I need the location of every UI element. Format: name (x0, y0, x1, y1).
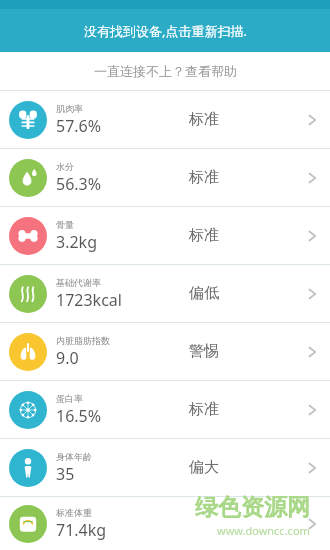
staticText: 内脏脂肪指数 (56, 335, 110, 346)
button[interactable]: 水分 (0, 149, 330, 206)
staticText: 3.2kg (56, 231, 97, 253)
staticText: 警惕 (189, 342, 219, 361)
staticText: 没有找到设备,点击重新扫描. (84, 22, 247, 40)
staticText: 肌肉率 (56, 103, 83, 114)
staticText: 57.6% (56, 115, 102, 137)
staticText: 71.4kg (56, 519, 107, 541)
staticText: 16.5% (56, 405, 102, 427)
staticText: 标准 (189, 110, 219, 129)
staticText: 9.0 (56, 347, 79, 369)
button[interactable]: 标准体重 (0, 497, 330, 550)
button[interactable]: 基础代谢率 (0, 265, 330, 322)
staticText: 标准 (189, 226, 219, 245)
staticText: 绿色资源网 (195, 493, 310, 522)
staticText: 标准体重 (56, 507, 92, 518)
staticText: 标准 (189, 168, 219, 187)
staticText: 骨量 (56, 219, 74, 230)
other: 查看详情 (304, 112, 320, 128)
staticText: 身体年龄 (56, 451, 92, 462)
other: 查看详情 (304, 460, 320, 476)
button[interactable]: 没有找到设备,点击重新扫描. (0, 9, 330, 52)
other: 查看详情 (304, 516, 320, 532)
staticText: 水分 (56, 161, 74, 172)
other: 查看详情 (304, 402, 320, 418)
button[interactable]: 骨量 (0, 207, 330, 264)
staticText: www.downcc.com (217, 523, 310, 538)
staticText: 56.3% (56, 173, 102, 195)
staticText: 基础代谢率 (56, 277, 101, 288)
other: 查看详情 (304, 344, 320, 360)
staticText: 标准 (189, 400, 219, 419)
other: 查看详情 (304, 170, 320, 186)
button[interactable]: 一直连接不上？查看帮助 (0, 52, 330, 90)
button[interactable]: 身体年龄 (0, 439, 330, 496)
staticText: 偏大 (189, 458, 219, 477)
button[interactable]: 内脏脂肪指数 (0, 323, 330, 380)
other: 查看详情 (304, 228, 320, 244)
staticText: 一直连接不上？查看帮助 (94, 63, 237, 79)
staticText: 偏低 (189, 284, 219, 303)
staticText: 35 (56, 463, 75, 485)
staticText: 蛋白率 (56, 393, 83, 404)
staticText: 1723kcal (56, 289, 122, 311)
button[interactable]: 肌肉率 (0, 91, 330, 148)
other: 查看详情 (304, 286, 320, 302)
button[interactable]: 蛋白率 (0, 381, 330, 438)
